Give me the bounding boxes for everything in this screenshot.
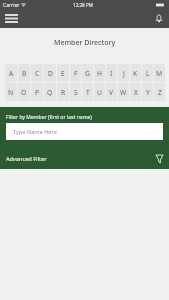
staticText: Z <box>158 88 162 97</box>
button[interactable]: D <box>44 64 56 82</box>
staticText: C <box>35 69 40 78</box>
staticText: J <box>123 69 125 78</box>
button[interactable]: Advanced Filter <box>153 153 165 165</box>
button[interactable]: H <box>94 64 105 82</box>
button[interactable]: P <box>31 83 43 101</box>
button[interactable]: Y <box>142 83 153 101</box>
staticText: M <box>156 69 163 78</box>
staticText: Type Name Here <box>13 128 57 136</box>
button[interactable]: Type Name Here <box>6 123 163 140</box>
button[interactable]: G <box>82 64 93 82</box>
button[interactable]: C <box>31 64 43 82</box>
button[interactable]: Z <box>154 83 165 101</box>
button[interactable]: A <box>5 64 17 82</box>
button[interactable]: M <box>154 64 165 82</box>
button[interactable]: Advanced Filter <box>0 151 53 167</box>
button[interactable]: T <box>82 83 93 101</box>
button[interactable]: Q <box>44 83 56 101</box>
staticText: Q <box>47 88 53 97</box>
staticText: H <box>97 69 102 78</box>
staticText: R <box>61 88 66 97</box>
staticText: V <box>109 88 114 97</box>
staticText: P <box>35 88 40 97</box>
button[interactable]: U <box>94 83 105 101</box>
staticText: U <box>97 88 102 97</box>
button[interactable]: R <box>57 83 69 101</box>
staticText: O <box>21 88 27 97</box>
staticText: X <box>134 88 138 97</box>
staticText: Carrier <box>3 2 20 9</box>
staticText: T <box>86 88 90 97</box>
button[interactable]: J <box>118 64 129 82</box>
button[interactable]: L <box>142 64 153 82</box>
staticText: N <box>8 88 14 97</box>
button[interactable]: I <box>106 64 117 82</box>
button[interactable]: Notifications <box>152 11 166 25</box>
staticText: K <box>133 69 138 78</box>
staticText: D <box>48 69 53 78</box>
button[interactable]: X <box>130 83 141 101</box>
staticText: S <box>74 88 78 97</box>
button[interactable]: B <box>18 64 30 82</box>
staticText: I <box>110 69 113 78</box>
staticText: G <box>85 69 90 78</box>
staticText: F <box>74 69 78 78</box>
staticText: 12:28 PM <box>73 2 93 8</box>
button[interactable]: Menu <box>0 9 23 27</box>
staticText: A <box>9 69 14 78</box>
button[interactable]: S <box>70 83 81 101</box>
staticText: Member Directory <box>54 38 116 48</box>
button[interactable]: W <box>118 83 129 101</box>
staticText: B <box>22 69 27 78</box>
button[interactable]: V <box>106 83 117 101</box>
button[interactable]: K <box>130 64 141 82</box>
button[interactable]: F <box>70 64 81 82</box>
staticText: E <box>61 69 65 78</box>
staticText: L <box>146 69 150 78</box>
staticText: Y <box>146 88 150 97</box>
button[interactable]: O <box>18 83 30 101</box>
staticText: W <box>120 88 127 97</box>
staticText: Advanced Filter <box>6 155 47 163</box>
button[interactable]: N <box>5 83 17 101</box>
button[interactable]: E <box>57 64 69 82</box>
staticText: Filter by Member (first or last name) <box>6 114 92 121</box>
